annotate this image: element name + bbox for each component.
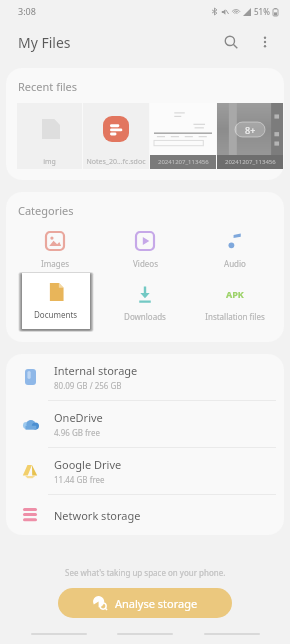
staticText: My Files <box>18 33 71 52</box>
button[interactable]: Analyse storage <box>58 588 232 618</box>
staticText: 20241207_113456 <box>158 158 209 166</box>
staticText: Network storage <box>54 508 141 523</box>
staticText: Categories <box>18 203 74 218</box>
staticText: Internal storage <box>54 363 138 378</box>
button[interactable]: Network storage <box>6 495 284 535</box>
button[interactable]: Navigation <box>31 626 87 642</box>
staticText: Notes_20...fc.sdoc <box>86 157 146 167</box>
button[interactable]: Notes_20...fc.sdoc <box>83 103 149 169</box>
staticText: Audio <box>224 258 246 269</box>
button[interactable]: Google Drive <box>6 448 284 494</box>
button[interactable] <box>10 281 100 326</box>
button[interactable]: Search <box>214 25 248 59</box>
staticText: Installation files <box>205 311 265 322</box>
button[interactable]: APK <box>190 281 280 326</box>
staticText: 80.09 GB / 256 GB <box>54 380 122 391</box>
button[interactable]: Images <box>10 228 100 273</box>
staticText: 3:08 <box>18 5 36 17</box>
staticText: 8+ <box>245 124 256 136</box>
button[interactable]: OneDrive <box>6 401 284 447</box>
staticText: Images <box>41 258 69 269</box>
staticText: Documents <box>34 309 78 320</box>
staticText: OneDrive <box>54 410 103 425</box>
staticText: Downloads <box>124 311 166 322</box>
button[interactable]: Navigation <box>117 626 173 642</box>
staticText: 20241207_113456 <box>225 158 276 166</box>
staticText: 51% <box>254 6 270 17</box>
staticText: See what's taking up space on your phone… <box>65 567 226 578</box>
staticText: Videos <box>133 258 158 269</box>
button[interactable]: More options <box>248 25 282 59</box>
staticText: 11.44 GB free <box>54 474 105 485</box>
staticText: img <box>43 157 56 167</box>
button[interactable]: img <box>17 103 82 169</box>
staticText: 4.96 GB free <box>54 427 100 438</box>
button[interactable]: Internal storage <box>6 354 284 400</box>
staticText: APK <box>226 288 244 300</box>
button[interactable]: Navigation <box>204 626 260 642</box>
staticText: Recent files <box>18 79 78 94</box>
button[interactable]: Downloads <box>100 281 190 326</box>
staticText: Analyse storage <box>115 596 198 611</box>
button[interactable]: Recent files <box>6 68 284 180</box>
button[interactable]: Videos <box>100 228 190 273</box>
button[interactable]: 20241207_113456 <box>150 103 216 169</box>
button[interactable]: 8+ <box>217 103 283 169</box>
button[interactable]: Audio <box>190 228 280 273</box>
button[interactable]: Documents <box>22 273 90 329</box>
staticText: Google Drive <box>54 457 122 472</box>
